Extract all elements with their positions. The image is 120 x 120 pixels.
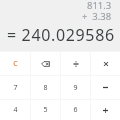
- button[interactable]: Multiply: [91, 52, 120, 75]
- staticText: 6: [73, 105, 78, 115]
- button[interactable]: Minus: [91, 76, 120, 99]
- staticText: 4: [13, 105, 18, 115]
- button[interactable]: 5: [31, 100, 60, 120]
- staticText: + 3.38: [82, 10, 112, 23]
- button[interactable]: Plus: [91, 100, 120, 120]
- button[interactable]: Divide: [61, 52, 90, 75]
- button[interactable]: Backspace: [31, 52, 60, 75]
- staticText: 8: [43, 83, 48, 93]
- button[interactable]: 7: [0, 76, 30, 99]
- staticText: 9: [73, 83, 78, 93]
- staticText: C: [13, 59, 18, 69]
- staticText: 7: [13, 83, 18, 93]
- staticText: = 240.029586: [7, 24, 115, 46]
- button[interactable]: 6: [61, 100, 90, 120]
- button[interactable]: Clear: [0, 52, 30, 75]
- staticText: 811.3: [87, 0, 112, 12]
- button[interactable]: 8: [31, 76, 60, 99]
- staticText: 5: [43, 105, 48, 115]
- button[interactable]: 4: [0, 100, 30, 120]
- button[interactable]: 9: [61, 76, 90, 99]
